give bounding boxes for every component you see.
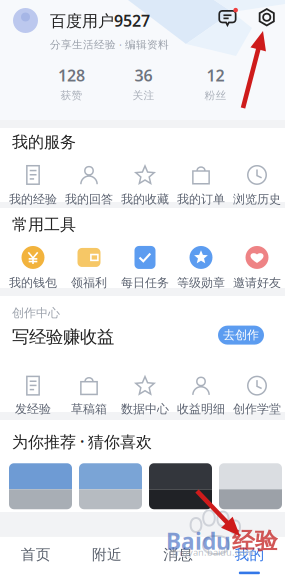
staticText: 我的钱包: [9, 275, 57, 290]
staticText: 发经验: [15, 402, 51, 416]
staticText: 128: [58, 65, 85, 86]
staticText: 收益明细: [177, 402, 225, 416]
staticText: 创作中心: [12, 306, 60, 320]
button[interactable]: 收益明细: [173, 375, 229, 416]
staticText: 12: [206, 65, 224, 86]
button[interactable]: [9, 463, 72, 509]
staticText: 我的: [234, 546, 264, 564]
staticText: 首页: [21, 546, 51, 564]
staticText: 关注: [132, 89, 154, 102]
staticText: 去创作: [223, 328, 259, 342]
staticText: 百度用户9527: [50, 10, 150, 31]
staticText: 每日任务: [121, 275, 169, 290]
staticText: 我的经验: [9, 192, 57, 207]
button[interactable]: 头像: [13, 8, 38, 33]
button[interactable]: 消息: [142, 537, 214, 575]
staticText: 我的订单: [177, 192, 225, 207]
staticText: 草稿箱: [71, 402, 107, 416]
button[interactable]: 创作学堂: [229, 375, 285, 416]
staticText: 为你推荐 · 猜你喜欢: [12, 431, 152, 452]
button[interactable]: 我的收藏: [117, 164, 173, 207]
button[interactable]: 等级勋章: [173, 245, 229, 290]
staticText: 邀请好友: [233, 275, 281, 290]
button[interactable]: 我的经验: [5, 164, 61, 207]
button[interactable]: [149, 463, 212, 509]
button[interactable]: 数据中心: [117, 375, 173, 416]
button[interactable]: 领福利: [61, 245, 117, 290]
button[interactable]: 12: [179, 67, 251, 99]
staticText: 我的收藏: [121, 192, 169, 207]
staticText: 写经验赚收益: [12, 326, 114, 348]
staticText: 等级勋章: [177, 275, 225, 290]
button[interactable]: 128: [35, 67, 107, 99]
staticText: 创作学堂: [233, 402, 281, 416]
button[interactable]: 每日任务: [117, 245, 173, 290]
button[interactable]: [219, 463, 282, 509]
staticText: 获赞: [60, 89, 82, 102]
staticText: 附近: [92, 546, 122, 564]
staticText: 经验: [232, 527, 278, 555]
staticText: 粉丝: [204, 89, 226, 102]
button[interactable]: 邀请好友: [229, 245, 285, 290]
staticText: 我的回答: [65, 192, 113, 207]
staticText: 我的服务: [12, 132, 76, 152]
button[interactable]: 浏览历史: [229, 164, 285, 207]
button[interactable]: 去创作: [218, 326, 264, 345]
button[interactable]: 我的订单: [173, 164, 229, 207]
button[interactable]: 附近: [71, 537, 142, 575]
button[interactable]: [79, 463, 142, 509]
staticText: 数据中心: [121, 402, 169, 416]
staticText: 浏览历史: [233, 192, 281, 207]
button[interactable]: 36: [107, 67, 179, 99]
staticText: 分享生活经验 · 编辑资料: [50, 37, 169, 51]
button[interactable]: 草稿箱: [61, 375, 117, 416]
staticText: 消息: [163, 546, 193, 564]
staticText: jingyan.baidu.com: [172, 546, 254, 558]
button[interactable]: 消息: [217, 8, 237, 27]
button[interactable]: 我的钱包: [5, 245, 61, 290]
button[interactable]: 首页: [0, 537, 71, 575]
staticText: 常用工具: [12, 215, 76, 234]
button[interactable]: 我的回答: [61, 164, 117, 207]
staticText: Baidu: [166, 526, 231, 556]
button[interactable]: 我的: [214, 537, 285, 575]
button[interactable]: 设置: [249, 8, 276, 26]
staticText: 领福利: [71, 275, 107, 290]
staticText: 36: [134, 65, 152, 86]
button[interactable]: 发经验: [5, 375, 61, 416]
